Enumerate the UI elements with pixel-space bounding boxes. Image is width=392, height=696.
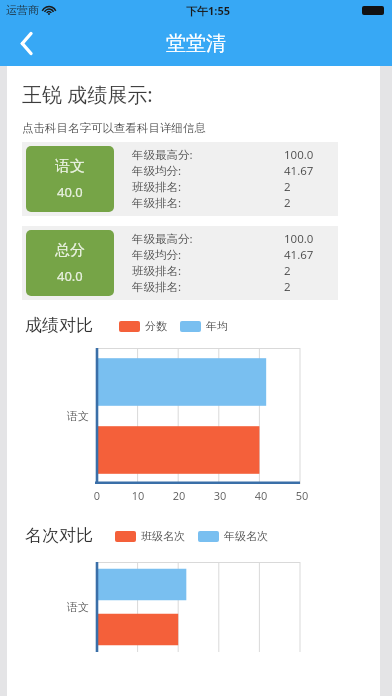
staticText: 语文	[67, 409, 89, 423]
staticText: 40.0	[57, 183, 83, 201]
staticText: 40.0	[57, 267, 83, 285]
staticText: 年级排名:	[132, 195, 182, 211]
staticText: 年级均分:	[132, 163, 182, 179]
staticText: 20	[168, 488, 190, 503]
staticText: 点击科目名字可以查看科目详细信息	[22, 121, 206, 135]
staticText: 2	[284, 195, 291, 211]
staticText: 年级均分:	[132, 247, 182, 263]
staticText: 王锐 成绩展示:	[22, 81, 153, 108]
staticText: 年级最高分:	[132, 147, 193, 163]
staticText: 总分	[55, 241, 85, 260]
button[interactable]: 返回	[0, 20, 52, 66]
staticText: 2	[284, 179, 291, 195]
staticText: 30	[209, 488, 231, 503]
staticText: 运营商	[6, 3, 39, 17]
staticText: 年级名次	[224, 529, 268, 543]
staticText: 班级排名:	[132, 263, 182, 279]
staticText: 41.67	[284, 163, 314, 179]
staticText: 10	[127, 488, 149, 503]
staticText: 下午1:55	[186, 3, 230, 18]
button[interactable]: 总分	[26, 230, 114, 296]
staticText: 班级排名:	[132, 179, 182, 195]
staticText: 40	[250, 488, 272, 503]
staticText: 名次对比	[25, 525, 93, 546]
staticText: 语文	[55, 157, 85, 176]
staticText: 班级名次	[141, 529, 185, 543]
staticText: 语文	[67, 600, 89, 614]
staticText: 分数	[145, 319, 167, 333]
button[interactable]: 语文	[26, 146, 114, 212]
staticText: 50	[291, 488, 313, 503]
staticText: 年均	[206, 319, 228, 333]
staticText: 2	[284, 263, 291, 279]
staticText: 41.67	[284, 247, 314, 263]
staticText: 堂堂清	[166, 31, 226, 56]
staticText: 100.0	[284, 231, 314, 247]
staticText: 年级最高分:	[132, 231, 193, 247]
staticText: 年级排名:	[132, 279, 182, 295]
staticText: 0	[86, 488, 108, 503]
staticText: 100.0	[284, 147, 314, 163]
staticText: 2	[284, 279, 291, 295]
staticText: 成绩对比	[25, 315, 93, 336]
